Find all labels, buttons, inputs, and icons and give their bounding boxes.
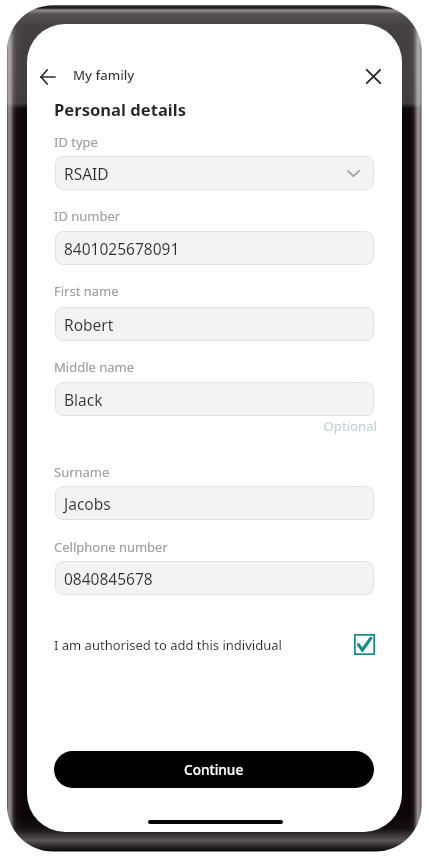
button[interactable]: Continue — [54, 751, 374, 788]
button[interactable]: Jacobs — [55, 486, 374, 520]
button[interactable]: RSAID — [55, 156, 374, 190]
staticText: Optional — [55, 417, 377, 435]
button[interactable]: Close — [353, 56, 393, 96]
button[interactable]: Robert — [55, 307, 374, 341]
staticText: Robert — [64, 314, 114, 335]
staticText: First name — [54, 282, 119, 300]
staticText: Jacobs — [64, 493, 111, 514]
staticText: 8401025678091 — [64, 238, 180, 259]
button[interactable]: Back — [27, 57, 67, 97]
button[interactable]: 0840845678 — [55, 561, 374, 595]
staticText: Cellphone number — [54, 538, 168, 556]
button[interactable]: Black — [55, 382, 374, 416]
staticText: Continue — [184, 760, 244, 779]
staticText: Surname — [54, 463, 110, 481]
staticText: ID number — [54, 207, 121, 225]
staticText: Middle name — [54, 358, 135, 376]
staticText: Personal details — [54, 98, 187, 121]
staticText: 0840845678 — [64, 568, 153, 589]
staticText: My family — [73, 66, 135, 84]
button[interactable]: 8401025678091 — [55, 231, 374, 265]
staticText: I am authorised to add this individual — [54, 636, 282, 654]
button[interactable]: I am authorised to add this individual — [54, 632, 375, 657]
staticText: RSAID — [64, 163, 109, 184]
staticText: ID type — [54, 133, 98, 151]
staticText: Black — [64, 389, 103, 410]
